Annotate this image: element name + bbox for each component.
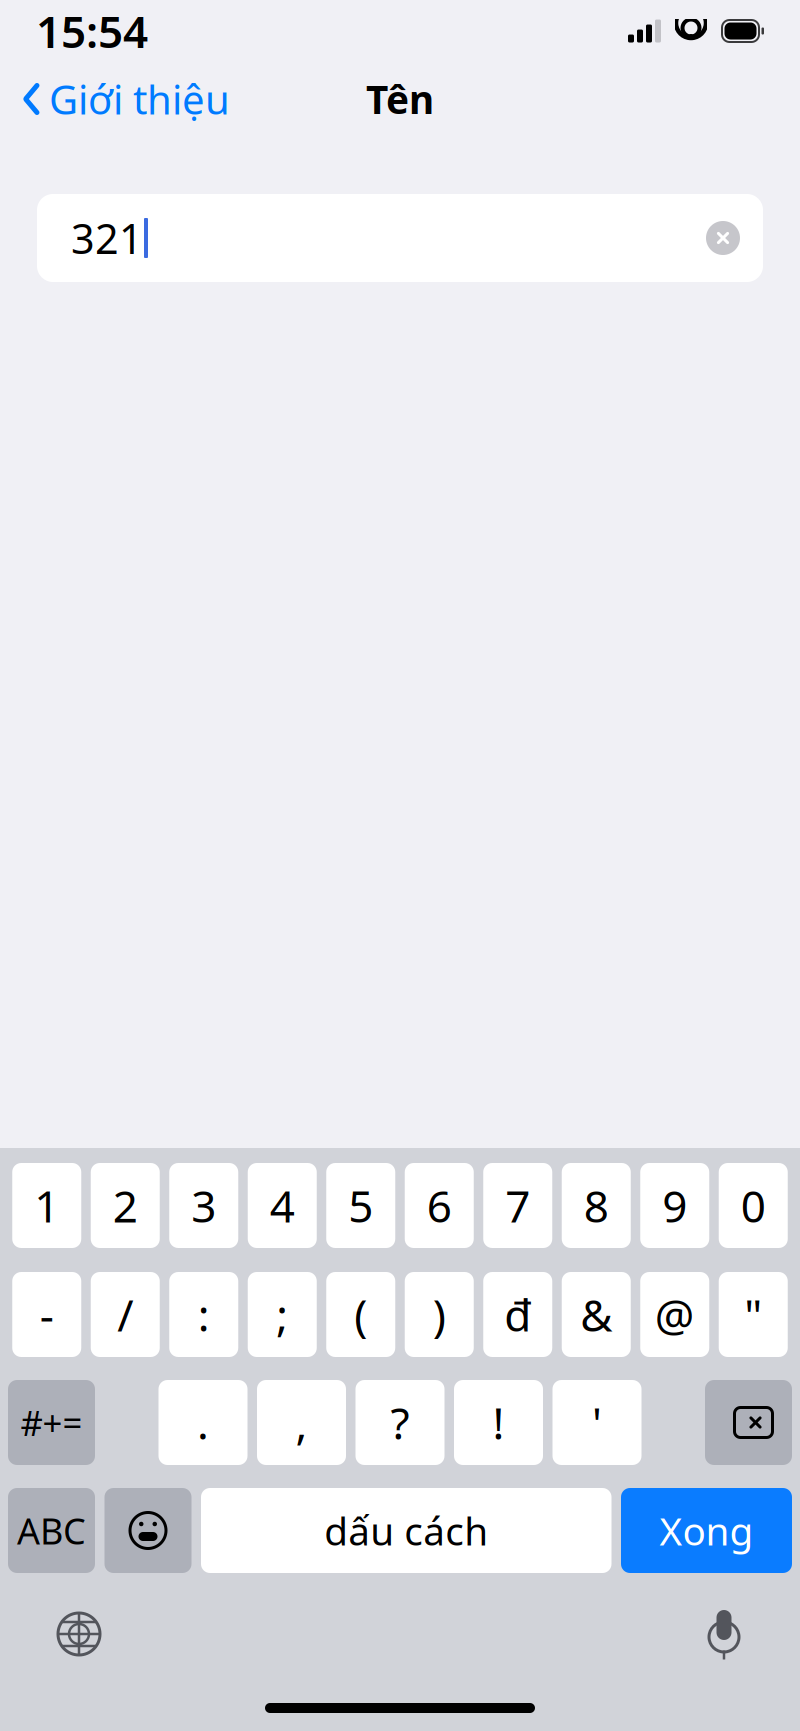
staticText: 5 [348, 1176, 373, 1235]
button[interactable]: #+= [8, 1380, 95, 1465]
button[interactable]: - [12, 1272, 81, 1357]
button[interactable]: Biểu tượng cảm xúc [104, 1488, 191, 1573]
button[interactable]: Xoá lùi [705, 1380, 792, 1465]
button[interactable]: 9 [640, 1163, 709, 1248]
staticText: ABC [17, 1507, 86, 1554]
button[interactable]: Xong [621, 1488, 792, 1573]
staticText: : [198, 1285, 210, 1344]
staticText: 3 [191, 1176, 216, 1235]
button[interactable]: ) [405, 1272, 474, 1357]
staticText: ; [276, 1285, 288, 1344]
button[interactable]: dấu cách [201, 1488, 611, 1573]
button[interactable]: 7 [483, 1163, 552, 1248]
button[interactable]: 6 [405, 1163, 474, 1248]
staticText: ( [354, 1285, 367, 1344]
staticText: Tên [366, 73, 434, 125]
staticText: , [295, 1393, 307, 1452]
staticText: dấu cách [324, 1505, 488, 1556]
button[interactable]: @ [640, 1272, 709, 1357]
staticText: " [744, 1285, 762, 1344]
button[interactable]: 1 [12, 1163, 81, 1248]
button[interactable]: & [562, 1272, 631, 1357]
button[interactable]: 3 [169, 1163, 238, 1248]
staticText: ? [390, 1393, 409, 1452]
button[interactable]: ? [355, 1380, 444, 1465]
button[interactable]: 2 [91, 1163, 160, 1248]
staticText: đ [504, 1285, 531, 1344]
staticText: #+= [20, 1399, 82, 1445]
staticText: 6 [427, 1176, 452, 1235]
staticText: 1 [34, 1176, 59, 1235]
button[interactable]: ' [552, 1380, 641, 1465]
staticText: @ [655, 1285, 695, 1344]
button[interactable]: . [158, 1380, 247, 1465]
button[interactable]: 5 [326, 1163, 395, 1248]
staticText: & [580, 1285, 612, 1344]
staticText: . [197, 1393, 209, 1452]
button[interactable]: ! [454, 1380, 543, 1465]
staticText: Giới thiệu [49, 72, 230, 125]
staticText: Xong [659, 1505, 753, 1556]
staticText: - [40, 1285, 54, 1344]
button[interactable]: 4 [248, 1163, 317, 1248]
staticText: 7 [505, 1176, 530, 1235]
staticText: ) [433, 1285, 446, 1344]
button[interactable]: 8 [562, 1163, 631, 1248]
staticText: 9 [662, 1176, 687, 1235]
staticText: 8 [584, 1176, 609, 1235]
button[interactable]: đ [483, 1272, 552, 1357]
button[interactable]: : [169, 1272, 238, 1357]
button[interactable]: ( [326, 1272, 395, 1357]
staticText: 321 [71, 211, 143, 265]
button[interactable]: " [719, 1272, 788, 1357]
staticText: 0 [741, 1176, 766, 1235]
button[interactable]: Đổi bàn phím [30, 1599, 128, 1669]
staticText: 15:54 [36, 2, 148, 60]
staticText: ! [492, 1393, 504, 1452]
button[interactable]: ABC [8, 1488, 95, 1573]
button[interactable]: Giới thiệu [0, 62, 252, 135]
button[interactable]: 0 [719, 1163, 788, 1248]
button[interactable]: / [91, 1272, 160, 1357]
button[interactable]: Xoá [697, 212, 749, 264]
button[interactable]: , [257, 1380, 346, 1465]
button[interactable]: Đọc chính tả [678, 1600, 770, 1668]
staticText: 2 [113, 1176, 138, 1235]
staticText: ' [592, 1393, 602, 1452]
staticText: 4 [270, 1176, 295, 1235]
button[interactable]: ; [248, 1272, 317, 1357]
staticText: / [117, 1285, 133, 1344]
